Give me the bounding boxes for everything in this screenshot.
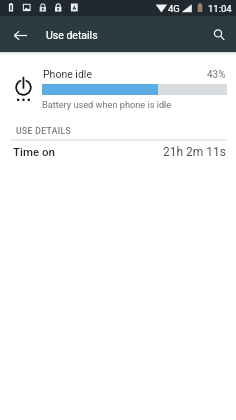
staticText: 43% (207, 69, 226, 81)
button[interactable]: Search (202, 18, 236, 52)
button[interactable]: Back (3, 18, 37, 52)
staticText: Phone idle (43, 68, 92, 80)
staticText: Time on (13, 145, 55, 158)
staticText: Use details (46, 29, 98, 41)
button[interactable]: Time on (0, 140, 236, 164)
staticText: 4G (168, 3, 180, 14)
staticText: 11:04 (208, 3, 232, 14)
staticText: Battery used when phone is idle (42, 99, 172, 110)
staticText: 21h 2m 11s (163, 145, 226, 159)
staticText: USE DETAILS (16, 126, 72, 136)
